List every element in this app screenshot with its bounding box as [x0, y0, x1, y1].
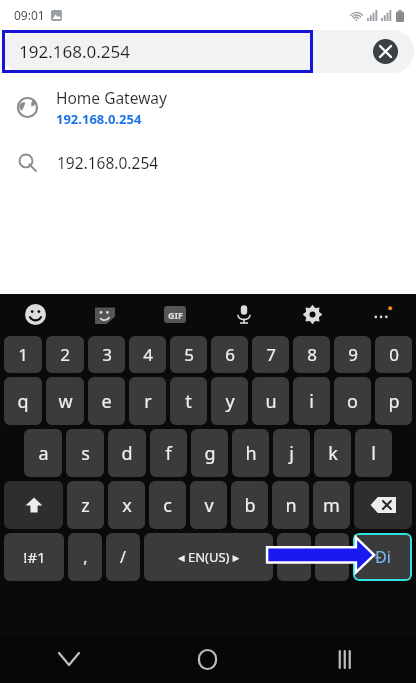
button[interactable] [315, 533, 349, 581]
staticText: g [204, 441, 216, 466]
staticText: 8 [307, 343, 317, 366]
staticText: 1 [18, 343, 28, 366]
button[interactable]: g [191, 429, 228, 477]
staticText: w [58, 389, 73, 414]
button[interactable]: z [67, 481, 104, 529]
staticText: GIF [168, 309, 183, 321]
staticText: 3 [102, 343, 112, 366]
button[interactable]: . [277, 533, 311, 581]
button[interactable]: 2 [46, 336, 84, 373]
button[interactable]: 0 [375, 336, 412, 373]
staticText: h [245, 441, 257, 466]
button[interactable]: t [170, 377, 207, 425]
staticText: 0 [389, 343, 399, 366]
staticText: e [101, 389, 112, 414]
staticText: x [122, 493, 132, 518]
button[interactable]: f [150, 429, 187, 477]
button[interactable]: , [68, 533, 102, 581]
button[interactable]: k [314, 429, 351, 477]
button[interactable]: Backspace [354, 481, 412, 529]
staticText: z [81, 493, 90, 518]
button[interactable]: GIF [140, 294, 209, 334]
staticText: k [328, 441, 338, 466]
staticText: 192.168.0.254 [56, 110, 142, 128]
button[interactable]: Home Gateway [0, 84, 416, 130]
button[interactable]: m [313, 481, 350, 529]
staticText: b [244, 493, 256, 518]
staticText: a [38, 441, 49, 466]
button[interactable]: Space, EN(US) [144, 533, 273, 581]
button[interactable]: 1 [4, 336, 42, 373]
button[interactable]: a [24, 429, 62, 477]
button[interactable]: q [4, 377, 42, 425]
staticText: i [309, 389, 314, 414]
button[interactable]: 6 [211, 336, 248, 373]
staticText: t [185, 389, 192, 414]
staticText: 2 [60, 343, 70, 366]
button[interactable]: 9 [334, 336, 371, 373]
button[interactable]: c [149, 481, 186, 529]
button[interactable]: Settings [278, 294, 347, 334]
button[interactable]: b [231, 481, 268, 529]
staticText: u [265, 389, 277, 414]
staticText: , [83, 546, 88, 568]
button[interactable]: 192.168.0.254 [2, 30, 313, 73]
staticText: 4 [143, 343, 153, 366]
button[interactable]: o [334, 377, 371, 425]
staticText: s [81, 441, 90, 466]
button[interactable]: s [66, 429, 104, 477]
staticText: ◂ EN(US) ▸ [178, 548, 240, 566]
button[interactable]: p [375, 377, 412, 425]
button[interactable]: x [108, 481, 145, 529]
button[interactable]: Recent apps [277, 635, 416, 683]
button[interactable]: 192.168.0.254 [0, 143, 416, 181]
button[interactable]: Clear text [373, 39, 398, 64]
button[interactable]: 3 [88, 336, 125, 373]
staticText: !#1 [23, 547, 46, 567]
button[interactable]: j [273, 429, 310, 477]
staticText: j [289, 441, 294, 466]
staticText: 192.168.0.254 [57, 152, 159, 173]
staticText: Home Gateway [56, 87, 167, 108]
button[interactable]: Stickers [70, 294, 140, 334]
staticText: v [204, 493, 214, 518]
button[interactable]: Hide keyboard [0, 635, 138, 683]
button[interactable]: Đi [353, 533, 412, 581]
button[interactable]: 5 [170, 336, 207, 373]
button[interactable]: l [355, 429, 392, 477]
staticText: q [17, 389, 29, 414]
staticText: 192.168.0.254 [19, 40, 130, 63]
button[interactable]: n [272, 481, 309, 529]
staticText: c [163, 493, 172, 518]
button[interactable]: e [88, 377, 125, 425]
button[interactable]: i [293, 377, 330, 425]
staticText: d [121, 441, 133, 466]
button[interactable]: Home [138, 635, 277, 683]
staticText: . [292, 546, 297, 568]
button[interactable]: Emoji [0, 294, 70, 334]
staticText: / [120, 546, 126, 568]
button[interactable]: w [46, 377, 84, 425]
button[interactable]: / [106, 533, 140, 581]
button[interactable]: v [190, 481, 227, 529]
button[interactable]: y [211, 377, 248, 425]
staticText: Đi [375, 546, 391, 568]
button[interactable]: !#1 [4, 533, 64, 581]
staticText: o [347, 389, 358, 414]
button[interactable]: 7 [252, 336, 289, 373]
staticText: 6 [225, 343, 235, 366]
staticText: 9 [348, 343, 358, 366]
staticText: 5 [184, 343, 194, 366]
button[interactable]: r [129, 377, 166, 425]
button[interactable]: 8 [293, 336, 330, 373]
button[interactable]: Shift [4, 481, 63, 529]
button[interactable]: 4 [129, 336, 166, 373]
staticText: 7 [266, 343, 276, 366]
button[interactable]: More options [347, 294, 416, 334]
button[interactable]: u [252, 377, 289, 425]
button[interactable] [2, 30, 414, 73]
button[interactable]: h [232, 429, 269, 477]
button[interactable]: Voice input [209, 294, 278, 334]
staticText: 09:01 [14, 7, 45, 23]
button[interactable]: d [108, 429, 146, 477]
